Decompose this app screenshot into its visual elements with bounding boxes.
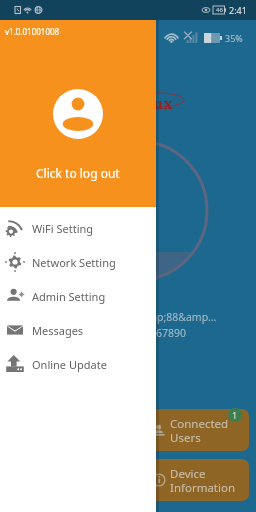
staticText: 46 — [216, 6, 223, 14]
staticText: Admin Setting — [32, 289, 106, 304]
button[interactable]: Admin Setting — [0, 279, 156, 313]
button[interactable]: Online Update — [0, 347, 156, 381]
button[interactable]: Messages — [0, 313, 156, 347]
staticText: 1234567890 — [126, 326, 187, 340]
button[interactable]: WiFi Setting — [0, 211, 156, 245]
staticText: Linux — [128, 93, 173, 113]
staticText: SSID:&amp;88&amp… — [108, 310, 217, 324]
button[interactable]: Network Setting — [0, 245, 156, 279]
staticText: Online Update — [32, 357, 107, 372]
staticText: 35% — [225, 32, 243, 44]
staticText: 1 — [232, 409, 238, 421]
button[interactable]: Connected Users — [147, 409, 249, 451]
staticText: 2:41 — [229, 4, 247, 16]
button[interactable]: Click to log out — [36, 165, 120, 181]
staticText: Connected Users — [170, 416, 229, 445]
staticText: Device Information — [170, 466, 236, 495]
staticText: Click to log out — [36, 165, 120, 181]
staticText: Messages — [32, 323, 84, 338]
staticText: Network Setting — [32, 255, 116, 270]
button[interactable]: Log out avatar — [53, 89, 103, 139]
staticText: WiFi Setting — [32, 221, 94, 236]
staticText: v1.0.01001008 — [5, 26, 60, 37]
button[interactable]: Device Information — [147, 459, 249, 501]
